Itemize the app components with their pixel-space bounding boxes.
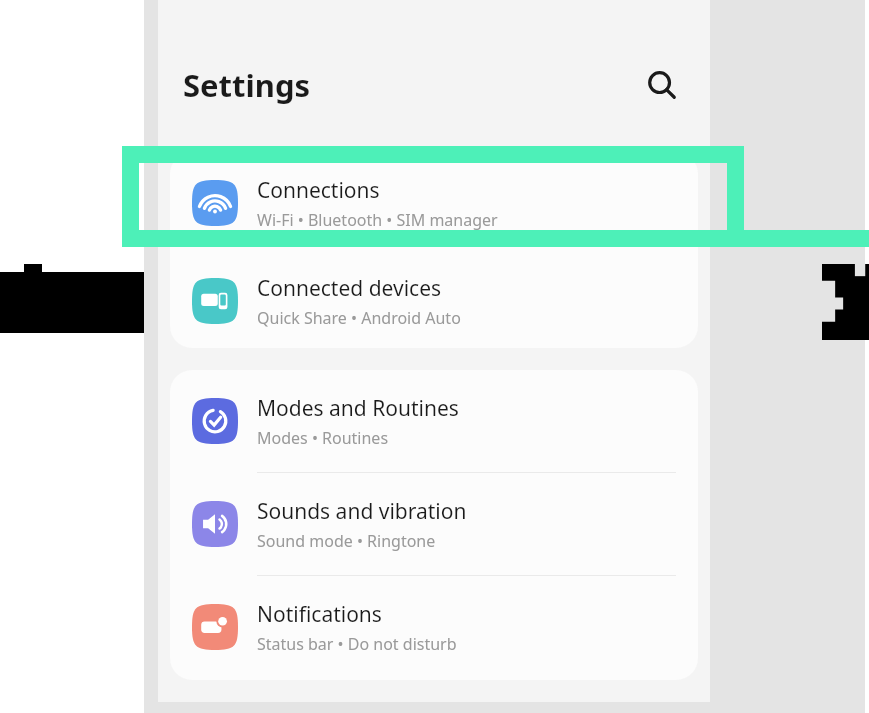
button[interactable]: Search — [638, 61, 686, 109]
staticText: Sounds and vibration — [257, 497, 467, 526]
button[interactable]: Notifications — [170, 576, 698, 678]
staticText: Modes • Routines — [257, 427, 389, 449]
button[interactable]: Connections — [170, 152, 698, 254]
staticText: Quick Share • Android Auto — [257, 307, 461, 329]
button[interactable]: Sounds and vibration — [170, 473, 698, 575]
staticText: Sound mode • Ringtone — [257, 530, 436, 552]
staticText: Connected devices — [257, 274, 442, 303]
staticText: Modes and Routines — [257, 394, 459, 423]
staticText: Notifications — [257, 600, 382, 629]
staticText: Settings — [183, 64, 311, 106]
staticText: Status bar • Do not disturb — [257, 633, 457, 655]
staticText: Wi-Fi • Bluetooth • SIM manager — [257, 209, 498, 231]
staticText: Connections — [257, 176, 380, 205]
button[interactable]: Connected devices — [170, 254, 698, 348]
button[interactable]: Modes and Routines — [170, 370, 698, 472]
